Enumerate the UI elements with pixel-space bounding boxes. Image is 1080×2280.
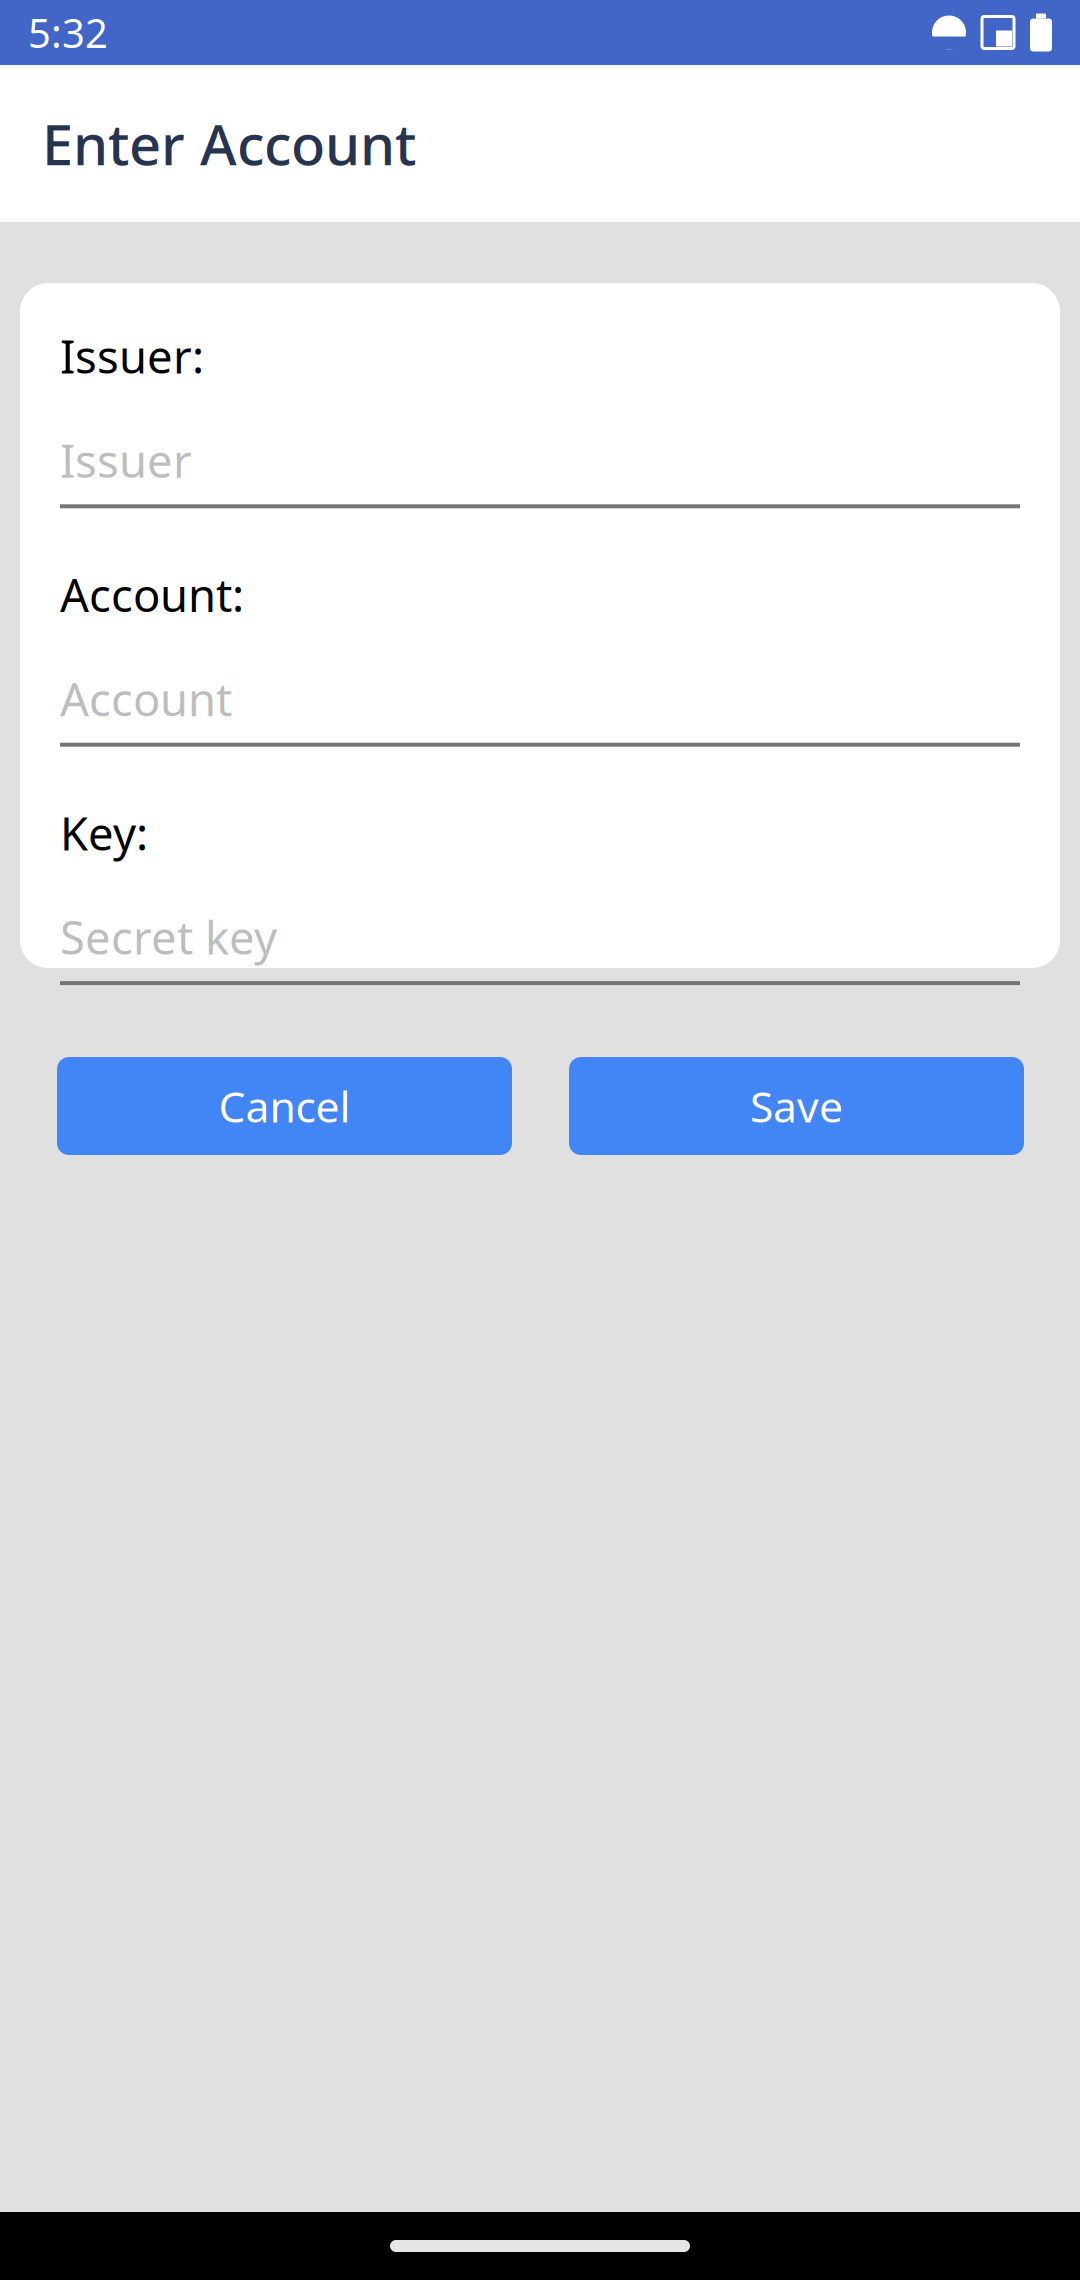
staticText: Cancel bbox=[218, 1078, 350, 1134]
staticText: Account bbox=[60, 668, 232, 729]
staticText: Enter Account bbox=[42, 106, 416, 181]
staticText: Secret key bbox=[60, 907, 277, 967]
staticText: Key: bbox=[60, 803, 148, 863]
staticText: Account: bbox=[60, 564, 244, 624]
button[interactable]: Cancel bbox=[57, 1057, 512, 1155]
button[interactable]: Save bbox=[569, 1057, 1024, 1155]
staticText: 5:32 bbox=[28, 6, 108, 59]
staticText: Issuer bbox=[60, 430, 192, 490]
staticText: Issuer: bbox=[60, 326, 204, 386]
staticText: Save bbox=[750, 1078, 843, 1134]
